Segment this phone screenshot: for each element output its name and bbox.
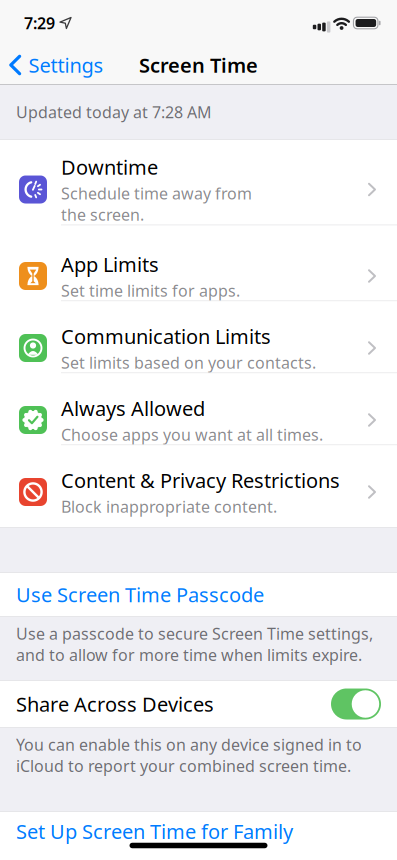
staticText: Set limits based on your contacts.	[61, 352, 316, 373]
staticText: Screen Time	[139, 52, 258, 78]
staticText: Choose apps you want at all times.	[61, 424, 323, 445]
staticText: Communication Limits	[61, 323, 271, 349]
staticText: App Limits	[61, 251, 159, 277]
staticText: Always Allowed	[61, 395, 205, 421]
staticText: Set Up Screen Time for Family	[16, 818, 293, 845]
staticText: 7:29	[24, 12, 55, 34]
button[interactable]: Always Allowed	[0, 384, 397, 456]
staticText: Block inappropriate content.	[61, 496, 277, 517]
staticText: Schedule time away from the screen.	[61, 183, 252, 225]
staticText: You can enable this on any device signed…	[16, 734, 362, 776]
staticText: Downtime	[61, 154, 158, 180]
staticText: Settings	[28, 52, 103, 78]
button[interactable]: Content & Privacy Restrictions	[0, 456, 397, 528]
staticText: Content & Privacy Restrictions	[61, 467, 340, 493]
staticText: Share Across Devices	[16, 691, 214, 717]
button[interactable]: Set Up Screen Time for Family	[0, 811, 397, 860]
button[interactable]: Share Across Devices	[331, 688, 381, 719]
button[interactable]: App Limits	[0, 240, 397, 312]
staticText: Use a passcode to secure Screen Time set…	[16, 623, 373, 665]
button[interactable]: Downtime	[0, 139, 397, 240]
button[interactable]: Communication Limits	[0, 312, 397, 384]
button[interactable]: Use Screen Time Passcode	[0, 572, 397, 617]
button[interactable]: Settings	[0, 52, 103, 78]
staticText: Set time limits for apps.	[61, 280, 240, 301]
staticText: Updated today at 7:28 AM	[16, 101, 212, 123]
staticText: Use Screen Time Passcode	[16, 581, 264, 608]
